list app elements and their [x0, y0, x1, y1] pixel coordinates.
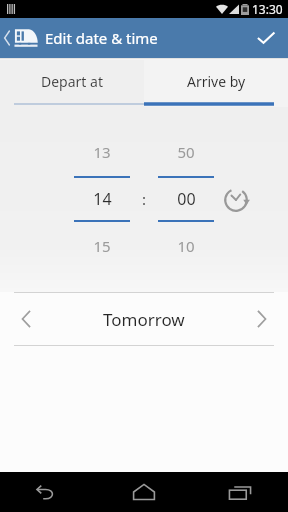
button[interactable]: 13: [74, 142, 130, 256]
button[interactable]: Done: [244, 18, 288, 58]
staticText: Edit date & time: [45, 28, 158, 48]
button[interactable]: Navigate up: [0, 18, 44, 58]
staticText: 10: [177, 236, 195, 256]
staticText: 13: [93, 142, 111, 162]
staticText: 15: [93, 236, 111, 256]
staticText: 00: [177, 188, 196, 210]
button[interactable]: Home: [96, 472, 192, 512]
button[interactable]: 50: [158, 142, 214, 256]
button[interactable]: Depart at: [0, 60, 144, 107]
button[interactable]: Recents: [192, 472, 288, 512]
button[interactable]: Arrive by: [144, 60, 288, 107]
button[interactable]: Recent times: [217, 181, 255, 219]
staticText: Arrive by: [187, 72, 246, 91]
staticText: Depart at: [41, 72, 103, 91]
staticText: 14: [93, 188, 112, 210]
staticText: Tomorrow: [103, 308, 185, 331]
staticText: :: [142, 189, 147, 209]
button[interactable]: Previous day: [0, 293, 52, 345]
staticText: 13:30: [252, 1, 283, 17]
button[interactable]: Tomorrow: [52, 293, 236, 345]
button[interactable]: Back: [0, 472, 96, 512]
staticText: 50: [177, 142, 195, 162]
button[interactable]: Next day: [236, 293, 288, 345]
